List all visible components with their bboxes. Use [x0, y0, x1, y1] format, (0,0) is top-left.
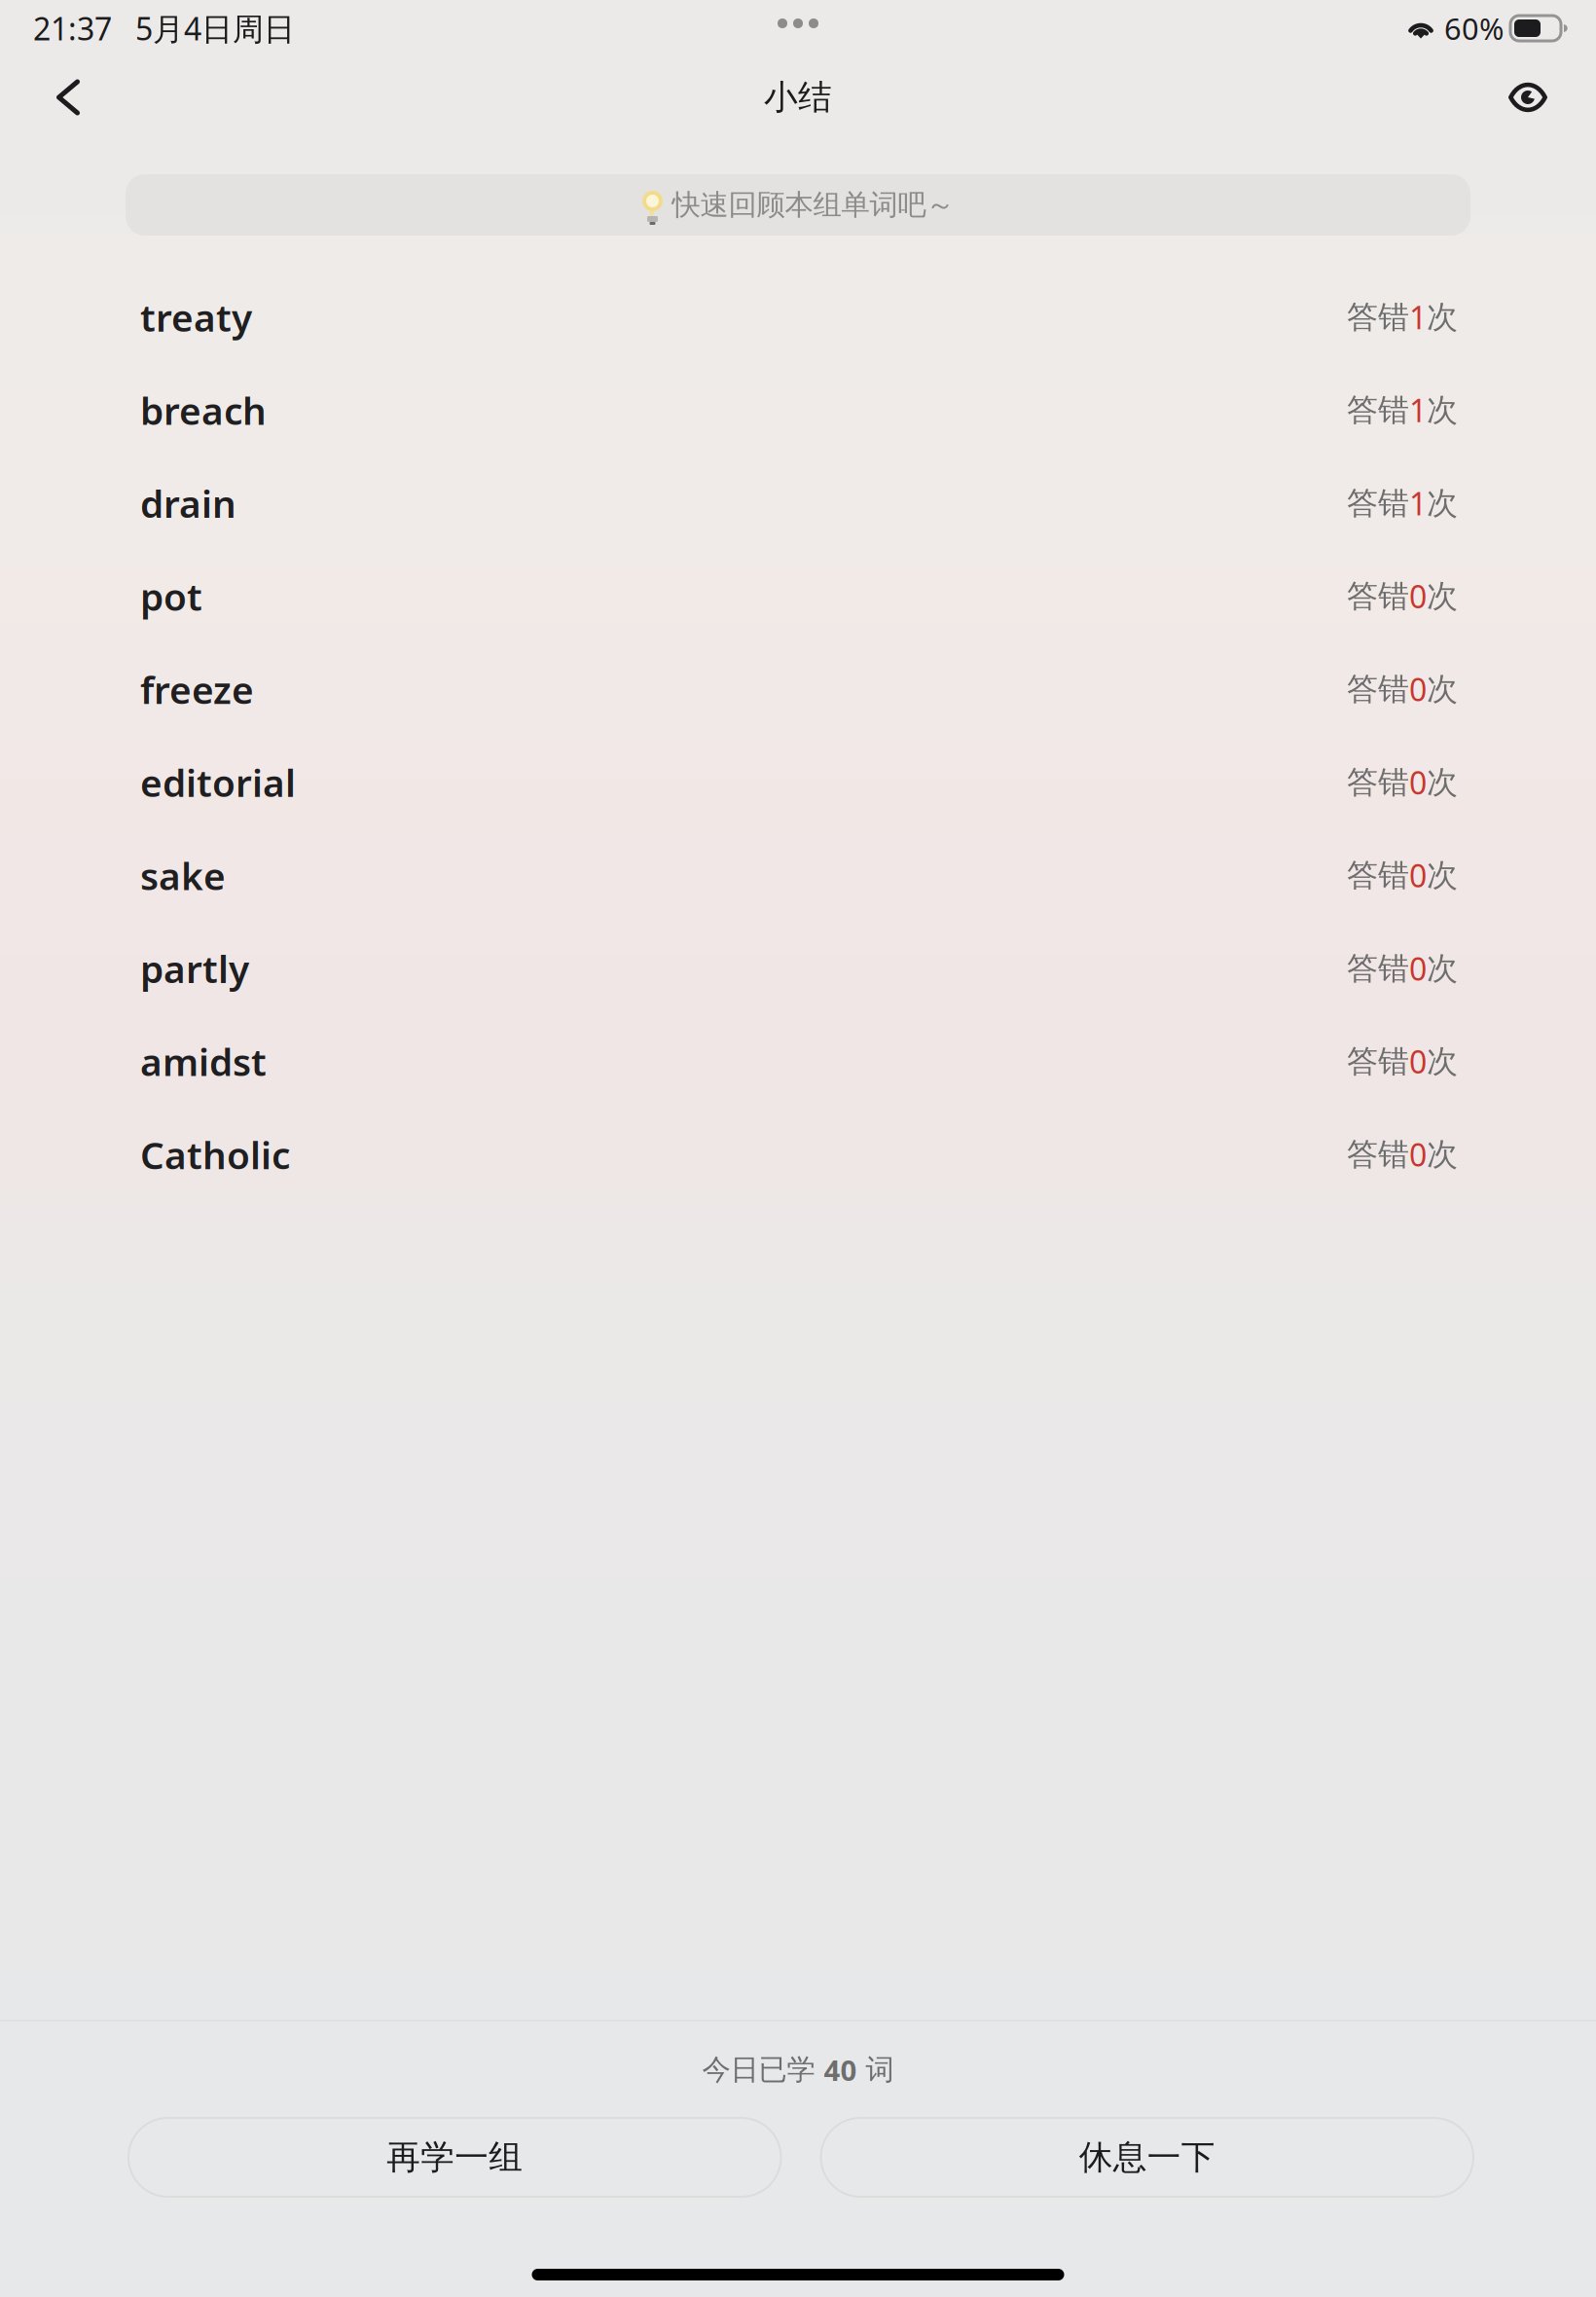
staticText: 0	[1409, 576, 1427, 617]
button[interactable]: 再学一组	[128, 2118, 781, 2197]
staticText: 次	[1427, 484, 1458, 522]
staticText: 答错	[1347, 484, 1409, 522]
button[interactable]: pot	[0, 550, 1596, 643]
staticText: 次	[1427, 1042, 1458, 1081]
staticText: pot	[140, 571, 202, 621]
staticText: 60%	[1444, 8, 1504, 48]
staticText: sake	[140, 850, 226, 900]
button[interactable]: partly	[0, 922, 1596, 1015]
button[interactable]: sake	[0, 829, 1596, 922]
staticText: 0	[1409, 669, 1427, 710]
staticText: 次	[1427, 763, 1458, 801]
staticText: 1	[1409, 483, 1427, 524]
button[interactable]: editorial	[0, 736, 1596, 829]
staticText: amidst	[140, 1036, 267, 1086]
staticText: 今日已学	[702, 2052, 824, 2087]
button[interactable]: 休息一下	[821, 2118, 1473, 2197]
staticText: freeze	[140, 664, 254, 714]
staticText: 小结	[764, 77, 832, 118]
button[interactable]: Show answers	[1481, 54, 1575, 141]
button[interactable]: Back	[21, 54, 115, 141]
staticText: 词	[857, 2052, 894, 2087]
staticText: 快速回顾本组单词吧～	[672, 187, 954, 222]
staticText: 5月4日周日	[135, 8, 295, 49]
staticText: breach	[140, 385, 267, 435]
staticText: 答错	[1347, 1135, 1409, 1174]
staticText: 再学一组	[387, 2137, 523, 2178]
staticText: partly	[140, 943, 249, 993]
staticText: 答错	[1347, 1042, 1409, 1081]
staticText: drain	[140, 478, 236, 528]
staticText: 0	[1409, 1134, 1427, 1175]
staticText: 答错	[1347, 763, 1409, 801]
button[interactable]: 快速回顾本组单词吧～	[0, 174, 1596, 236]
staticText: 次	[1427, 1135, 1458, 1174]
staticText: 答错	[1347, 856, 1409, 894]
staticText: 次	[1427, 670, 1458, 708]
staticText: 次	[1427, 298, 1458, 336]
button[interactable]: breach	[0, 364, 1596, 457]
staticText: 0	[1409, 948, 1427, 989]
staticText: 1	[1409, 390, 1427, 431]
staticText: 休息一下	[1079, 2137, 1215, 2178]
staticText: 答错	[1347, 298, 1409, 336]
button[interactable]: Catholic	[0, 1108, 1596, 1201]
staticText: 40	[824, 2051, 857, 2089]
staticText: treaty	[140, 292, 252, 342]
button[interactable]: freeze	[0, 643, 1596, 736]
button[interactable]: amidst	[0, 1015, 1596, 1108]
staticText: 0	[1409, 762, 1427, 803]
staticText: 次	[1427, 949, 1458, 988]
staticText: 次	[1427, 856, 1458, 894]
button[interactable]: drain	[0, 457, 1596, 550]
staticText: 答错	[1347, 391, 1409, 429]
staticText: 次	[1427, 391, 1458, 429]
staticText: 0	[1409, 1041, 1427, 1082]
staticText: 21:37	[33, 8, 112, 49]
staticText: 答错	[1347, 670, 1409, 708]
staticText: 答错	[1347, 949, 1409, 988]
staticText: 1	[1409, 296, 1427, 338]
staticText: editorial	[140, 757, 296, 807]
staticText: 0	[1409, 855, 1427, 896]
staticText: 答错	[1347, 577, 1409, 615]
staticText: Catholic	[140, 1130, 290, 1179]
staticText: 次	[1427, 577, 1458, 615]
button[interactable]: treaty	[0, 271, 1596, 364]
